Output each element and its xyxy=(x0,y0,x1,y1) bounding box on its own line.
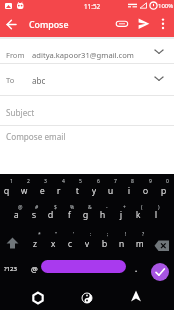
button[interactable]: c xyxy=(59,234,81,254)
button[interactable] xyxy=(26,287,48,309)
button[interactable]: j xyxy=(110,205,132,225)
staticText: & xyxy=(88,204,92,211)
staticText: ) xyxy=(158,204,160,211)
button[interactable]: x xyxy=(42,234,64,254)
staticText: @ xyxy=(31,264,38,274)
staticText: 2 xyxy=(27,178,30,185)
staticText: ! xyxy=(125,231,127,238)
staticText: ?123 xyxy=(4,265,17,273)
staticText: n xyxy=(119,238,125,250)
button[interactable] xyxy=(41,260,126,273)
staticText: 11:52 xyxy=(84,2,101,11)
button[interactable]: m xyxy=(129,234,151,254)
staticText: g xyxy=(83,209,89,221)
staticText: x xyxy=(51,238,56,250)
button[interactable]: y xyxy=(83,181,105,201)
staticText: Compose xyxy=(29,19,69,31)
staticText: 100% xyxy=(158,2,174,10)
staticText: q xyxy=(4,185,10,197)
button[interactable]: s xyxy=(23,205,45,225)
staticText: Subject xyxy=(6,107,35,118)
button[interactable]: h xyxy=(92,205,114,225)
staticText: 4 xyxy=(62,178,65,185)
staticText: v xyxy=(85,238,89,250)
button[interactable]: r xyxy=(48,181,70,201)
staticText: * xyxy=(38,231,41,238)
staticText: y xyxy=(92,185,96,197)
staticText: : xyxy=(90,231,92,238)
staticText: 7 xyxy=(114,178,117,185)
staticText: + xyxy=(123,204,126,211)
button[interactable]: d xyxy=(40,205,62,225)
staticText: u xyxy=(108,185,114,197)
button[interactable]: i xyxy=(118,181,140,201)
button[interactable] xyxy=(3,16,20,33)
button[interactable] xyxy=(0,37,174,64)
button[interactable] xyxy=(136,15,154,33)
staticText: d xyxy=(48,209,54,221)
staticText: i xyxy=(128,185,130,197)
button[interactable]: w xyxy=(13,181,35,201)
staticText: . xyxy=(135,263,138,274)
button[interactable] xyxy=(113,15,131,33)
staticText: 0 xyxy=(166,178,169,185)
button[interactable]: e xyxy=(31,181,53,201)
button[interactable] xyxy=(76,287,98,309)
button[interactable]: t xyxy=(66,181,88,201)
staticText: j xyxy=(120,209,122,221)
button[interactable]: g xyxy=(75,205,97,225)
staticText: ( xyxy=(141,204,143,211)
button[interactable]: l xyxy=(145,205,167,225)
staticText: a xyxy=(14,209,19,221)
button[interactable]: a xyxy=(5,205,27,225)
staticText: f xyxy=(68,209,71,221)
button[interactable]: v xyxy=(76,234,98,254)
button[interactable] xyxy=(0,96,174,125)
button[interactable] xyxy=(151,263,169,281)
staticText: o xyxy=(143,185,149,197)
staticText: Compose email xyxy=(6,131,66,142)
staticText: @ xyxy=(18,204,23,211)
button[interactable]: @ xyxy=(23,259,45,279)
button[interactable]: o xyxy=(135,181,157,201)
staticText: ' xyxy=(73,231,75,238)
staticText: l xyxy=(155,209,157,221)
button[interactable]: n xyxy=(111,234,133,254)
button[interactable]: z xyxy=(24,234,46,254)
staticText: From xyxy=(6,50,25,60)
button[interactable] xyxy=(156,15,171,33)
staticText: # xyxy=(35,204,39,211)
button[interactable] xyxy=(125,287,147,309)
staticText: k xyxy=(136,209,141,221)
staticText: s xyxy=(32,209,36,221)
button[interactable] xyxy=(153,239,172,254)
button[interactable] xyxy=(0,126,174,174)
button[interactable]: b xyxy=(94,234,116,254)
staticText: 8 xyxy=(131,178,134,185)
staticText: 1 xyxy=(10,178,13,185)
button[interactable]: p xyxy=(153,181,174,201)
button[interactable] xyxy=(0,64,174,95)
button[interactable]: q xyxy=(0,181,18,201)
staticText: 3 xyxy=(44,178,47,185)
staticText: w xyxy=(21,185,28,197)
button[interactable]: . xyxy=(125,258,147,278)
button[interactable] xyxy=(4,236,21,252)
staticText: - xyxy=(106,204,108,211)
staticText: aditya.kapoor31@gmail.com xyxy=(32,50,134,60)
staticText: e xyxy=(40,185,45,197)
staticText: r xyxy=(57,185,61,197)
staticText: $ xyxy=(54,204,57,211)
staticText: c xyxy=(68,238,73,250)
staticText: m xyxy=(136,238,144,250)
staticText: To xyxy=(6,75,15,85)
staticText: t xyxy=(76,185,79,197)
staticText: p xyxy=(161,185,167,197)
staticText: 9 xyxy=(149,178,152,185)
staticText: 5 xyxy=(79,178,82,185)
staticText: h xyxy=(100,209,106,221)
button[interactable]: u xyxy=(100,181,122,201)
button[interactable]: k xyxy=(127,205,149,225)
button[interactable]: f xyxy=(58,205,80,225)
button[interactable]: ?123 xyxy=(0,259,21,279)
